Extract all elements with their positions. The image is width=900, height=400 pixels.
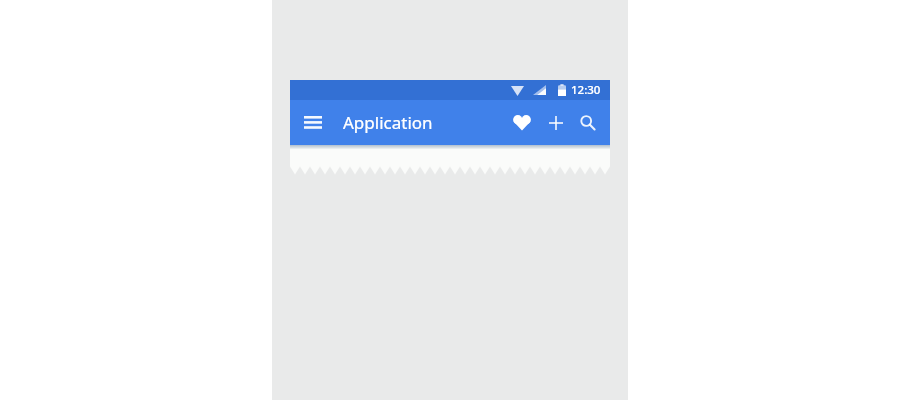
button[interactable] bbox=[549, 116, 563, 130]
staticText: Application bbox=[343, 111, 433, 134]
button[interactable] bbox=[513, 115, 531, 131]
staticText: 12:30 bbox=[571, 82, 601, 98]
button[interactable] bbox=[580, 115, 596, 131]
button[interactable] bbox=[304, 116, 322, 129]
